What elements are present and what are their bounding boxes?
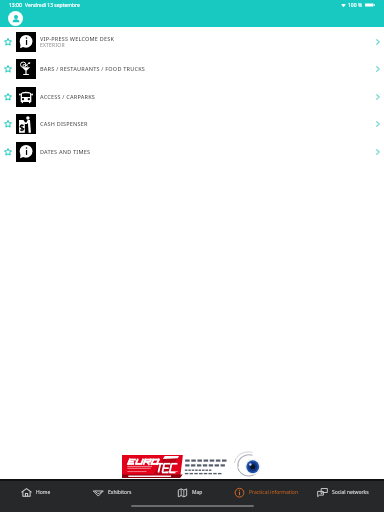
- button[interactable]: VIP-PRESS WELCOME DESK: [0, 28, 384, 55]
- staticText: Vendredi 13 septembre: [25, 2, 80, 9]
- staticText: Home: [36, 489, 51, 496]
- staticText: Social networks: [332, 489, 369, 496]
- staticText: ACCESS / CARPARKS: [40, 93, 96, 100]
- button[interactable]: CASH DISPENSER: [0, 110, 384, 137]
- staticText: EXTERIOR: [40, 42, 65, 49]
- staticText: Exhibitors: [108, 489, 132, 496]
- button[interactable]: BARS / RESTAURANTS / FOOD TRUCKS: [0, 55, 384, 82]
- button[interactable]: Home: [17, 479, 55, 506]
- staticText: 13:00: [9, 2, 22, 9]
- button[interactable]: Advertisement: [122, 455, 262, 478]
- button[interactable]: Account: [8, 11, 23, 26]
- button[interactable]: Map: [171, 479, 209, 506]
- staticText: BARS / RESTAURANTS / FOOD TRUCKS: [40, 65, 146, 72]
- staticText: 100 %: [348, 2, 363, 9]
- button[interactable]: Exhibitors: [89, 479, 135, 506]
- button[interactable]: DATES AND TIMES: [0, 138, 384, 165]
- button[interactable]: Practical information: [230, 479, 302, 506]
- staticText: Map: [192, 489, 203, 496]
- staticText: VIP-PRESS WELCOME DESK: [40, 35, 115, 42]
- staticText: Practical information: [249, 489, 298, 496]
- button[interactable]: Social networks: [312, 479, 374, 506]
- staticText: CASH DISPENSER: [40, 120, 88, 127]
- button[interactable]: ACCESS / CARPARKS: [0, 83, 384, 110]
- staticText: DATES AND TIMES: [40, 148, 91, 155]
